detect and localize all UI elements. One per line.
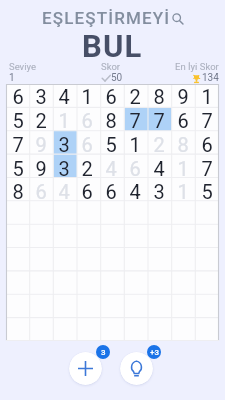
button[interactable] [75, 226, 99, 249]
button[interactable] [123, 203, 147, 226]
button[interactable]: 6 [6, 84, 29, 108]
button[interactable] [99, 318, 123, 341]
button[interactable]: 2 [123, 84, 147, 108]
button[interactable] [171, 272, 195, 295]
button[interactable] [147, 226, 171, 249]
button[interactable] [99, 203, 123, 226]
button[interactable]: 3 [52, 156, 75, 180]
button[interactable]: 2 [29, 108, 52, 132]
button[interactable]: 5 [195, 180, 219, 203]
button[interactable] [171, 226, 195, 249]
button[interactable] [52, 295, 75, 318]
button[interactable]: 3 [52, 132, 75, 156]
button[interactable]: Hints left [147, 345, 161, 359]
button[interactable]: 7 [123, 108, 147, 132]
button[interactable]: 1 [195, 84, 219, 108]
button[interactable] [52, 249, 75, 272]
button[interactable]: 8 [147, 84, 171, 108]
button[interactable]: 8 [99, 108, 123, 132]
button[interactable]: Adds left [96, 345, 110, 359]
button[interactable]: 2 [75, 156, 99, 180]
button[interactable]: 4 [52, 84, 75, 108]
button[interactable]: 5 [6, 156, 29, 180]
button[interactable] [6, 226, 29, 249]
button[interactable] [123, 295, 147, 318]
button[interactable] [171, 249, 195, 272]
button[interactable]: Hint [120, 352, 153, 385]
button[interactable]: 1 [52, 108, 75, 132]
button[interactable] [147, 272, 171, 295]
button[interactable]: 4 [147, 156, 171, 180]
button[interactable]: Add row [69, 352, 102, 385]
button[interactable]: 6 [99, 180, 123, 203]
button[interactable] [6, 249, 29, 272]
button[interactable]: 6 [29, 180, 52, 203]
button[interactable]: 9 [29, 156, 52, 180]
button[interactable]: 3 [147, 180, 171, 203]
button[interactable]: 2 [147, 132, 171, 156]
button[interactable]: 5 [99, 132, 123, 156]
button[interactable] [6, 272, 29, 295]
button[interactable]: 9 [171, 84, 195, 108]
button[interactable] [52, 272, 75, 295]
button[interactable] [52, 318, 75, 341]
button[interactable] [99, 249, 123, 272]
button[interactable] [75, 203, 99, 226]
button[interactable] [99, 272, 123, 295]
button[interactable] [75, 295, 99, 318]
button[interactable]: 6 [75, 108, 99, 132]
button[interactable]: 4 [99, 156, 123, 180]
button[interactable]: 7 [147, 108, 171, 132]
button[interactable] [171, 203, 195, 226]
button[interactable]: 1 [171, 156, 195, 180]
button[interactable] [6, 295, 29, 318]
button[interactable]: 9 [29, 132, 52, 156]
button[interactable] [171, 295, 195, 318]
button[interactable] [75, 272, 99, 295]
button[interactable] [147, 318, 171, 341]
button[interactable] [123, 249, 147, 272]
button[interactable] [99, 295, 123, 318]
button[interactable]: 7 [195, 156, 219, 180]
button[interactable] [29, 203, 52, 226]
button[interactable]: 6 [75, 180, 99, 203]
button[interactable] [52, 226, 75, 249]
button[interactable]: 4 [52, 180, 75, 203]
button[interactable]: 6 [99, 84, 123, 108]
button[interactable] [195, 295, 219, 318]
button[interactable]: 5 [6, 108, 29, 132]
button[interactable]: 6 [195, 132, 219, 156]
button[interactable] [99, 226, 123, 249]
button[interactable] [147, 203, 171, 226]
button[interactable] [29, 318, 52, 341]
button[interactable]: 1 [171, 180, 195, 203]
button[interactable] [29, 295, 52, 318]
button[interactable] [29, 249, 52, 272]
button[interactable] [29, 226, 52, 249]
button[interactable] [6, 203, 29, 226]
button[interactable]: 1 [123, 132, 147, 156]
button[interactable]: 6 [75, 132, 99, 156]
button[interactable] [123, 272, 147, 295]
button[interactable]: 4 [123, 180, 147, 203]
button[interactable] [29, 272, 52, 295]
button[interactable] [75, 249, 99, 272]
button[interactable] [147, 249, 171, 272]
button[interactable]: 8 [6, 180, 29, 203]
button[interactable] [75, 318, 99, 341]
button[interactable]: 8 [171, 132, 195, 156]
button[interactable] [52, 203, 75, 226]
button[interactable] [123, 318, 147, 341]
button[interactable] [6, 318, 29, 341]
button[interactable]: 7 [195, 108, 219, 132]
button[interactable]: 1 [75, 84, 99, 108]
button[interactable] [195, 203, 219, 226]
button[interactable] [195, 226, 219, 249]
button[interactable]: 7 [6, 132, 29, 156]
button[interactable]: 6 [123, 156, 147, 180]
button[interactable] [195, 272, 219, 295]
button[interactable] [195, 318, 219, 341]
button[interactable]: 3 [29, 84, 52, 108]
button[interactable] [195, 249, 219, 272]
button[interactable] [171, 318, 195, 341]
